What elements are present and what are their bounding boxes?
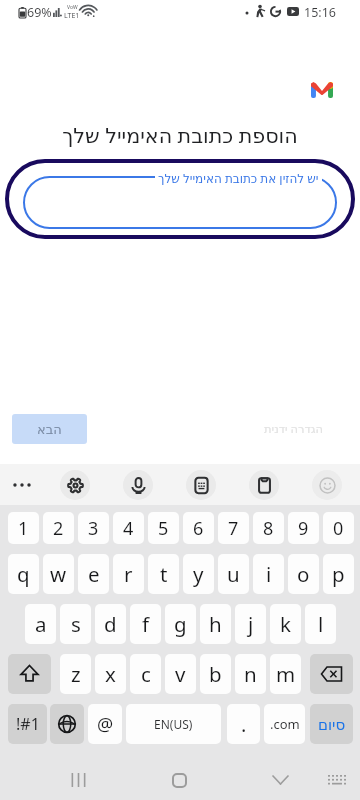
button[interactable]: Email address field [23, 176, 337, 229]
button[interactable]: i [253, 554, 284, 594]
button[interactable]: Backspace [310, 654, 353, 694]
button[interactable]: g [165, 604, 196, 644]
button[interactable]: More options [4, 469, 40, 500]
button[interactable]: Text mode [183, 469, 219, 500]
staticText: 5 [158, 516, 169, 541]
staticText: l [318, 610, 324, 638]
button[interactable]: y [183, 554, 214, 594]
button[interactable]: v [165, 654, 196, 694]
button[interactable]: t [148, 554, 179, 594]
staticText: k [280, 610, 291, 638]
button[interactable]: d [95, 604, 126, 644]
button[interactable]: Recents [48, 762, 108, 798]
button[interactable]: f [130, 604, 161, 644]
button[interactable]: Emoji [309, 469, 345, 500]
staticText: 9 [298, 516, 309, 541]
staticText: 8 [263, 516, 274, 541]
staticText: w [50, 560, 67, 588]
staticText: y [193, 560, 204, 588]
staticText: הבא [37, 422, 62, 437]
button[interactable]: 9 [288, 512, 319, 544]
staticText: 0 [333, 516, 344, 541]
staticText: 4 [123, 516, 134, 541]
button[interactable]: EN(US) [126, 704, 221, 744]
staticText: e [88, 560, 100, 588]
staticText: m [276, 660, 296, 688]
button[interactable]: c [130, 654, 161, 694]
staticText: t [160, 560, 168, 588]
button[interactable]: h [200, 604, 231, 644]
button[interactable]: a [25, 604, 56, 644]
button[interactable]: q [8, 554, 39, 594]
staticText: הגדרה ידנית [264, 421, 324, 437]
button[interactable]: . [227, 704, 260, 744]
button[interactable]: Settings [57, 469, 93, 500]
staticText: 6 [193, 516, 204, 541]
staticText: @ [97, 712, 114, 737]
button[interactable]: u [218, 554, 249, 594]
button[interactable]: Shift [8, 654, 51, 694]
staticText: n [244, 660, 257, 688]
button[interactable]: @ [88, 704, 122, 744]
staticText: b [209, 660, 222, 688]
button[interactable]: 3 [78, 512, 109, 544]
button[interactable]: 5 [148, 512, 179, 544]
staticText: 15:16 [304, 4, 336, 21]
button[interactable]: w [43, 554, 74, 594]
button[interactable]: b [200, 654, 231, 694]
button[interactable]: j [235, 604, 266, 644]
button[interactable]: l [305, 604, 336, 644]
button[interactable]: 1 [8, 512, 39, 544]
staticText: LTE1 [64, 11, 80, 21]
staticText: h [209, 610, 222, 638]
button[interactable]: הבא [12, 414, 87, 444]
button[interactable]: Voice input [120, 469, 156, 500]
staticText: .com [270, 715, 300, 733]
staticText: i [266, 560, 272, 588]
button[interactable]: 4 [113, 512, 144, 544]
staticText: 69% [27, 4, 52, 21]
staticText: f [142, 610, 150, 638]
button[interactable]: x [95, 654, 126, 694]
button[interactable]: 0 [323, 512, 354, 544]
button[interactable]: e [78, 554, 109, 594]
button[interactable]: .com [264, 704, 305, 744]
button[interactable]: n [235, 654, 266, 694]
button[interactable]: Switch keyboard [314, 762, 360, 798]
button[interactable]: m [270, 654, 301, 694]
button[interactable]: Home [149, 762, 209, 798]
button[interactable]: p [323, 554, 354, 594]
staticText: סיום [318, 716, 346, 733]
staticText: VoW [67, 4, 78, 11]
staticText: 7 [228, 516, 239, 541]
button[interactable]: s [60, 604, 91, 644]
button[interactable]: !#1 [8, 704, 47, 744]
button[interactable]: 2 [43, 512, 74, 544]
button[interactable]: 7 [218, 512, 249, 544]
button[interactable]: סיום [310, 704, 353, 744]
button[interactable]: Clipboard [246, 469, 282, 500]
staticText: z [71, 660, 81, 688]
staticText: !#1 [16, 713, 40, 735]
staticText: x [105, 660, 116, 688]
staticText: g [174, 610, 187, 638]
button[interactable]: z [60, 654, 91, 694]
staticText: q [17, 560, 30, 588]
button[interactable]: Change keyboard language [50, 704, 84, 744]
staticText: הוספת כתובת האימייל שלך [0, 121, 360, 149]
staticText: j [248, 610, 254, 638]
staticText: u [227, 560, 240, 588]
staticText: 2 [53, 516, 64, 541]
button[interactable]: k [270, 604, 301, 644]
button[interactable]: 6 [183, 512, 214, 544]
staticText: 3 [88, 516, 99, 541]
staticText: a [35, 610, 47, 638]
button[interactable]: הגדרה ידנית [256, 414, 332, 444]
button[interactable]: 8 [253, 512, 284, 544]
button[interactable]: r [113, 554, 144, 594]
button[interactable]: o [288, 554, 319, 594]
staticText: 1 [18, 516, 29, 541]
staticText: . [241, 711, 247, 738]
button[interactable]: Hide keyboard [255, 762, 305, 798]
staticText: s [71, 610, 81, 638]
